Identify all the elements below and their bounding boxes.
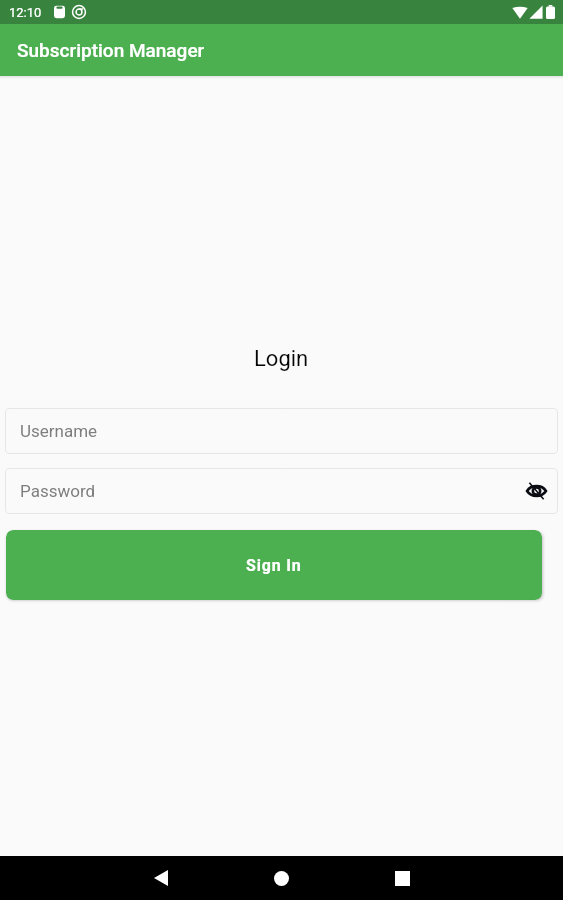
staticText: Username [20, 421, 98, 441]
button[interactable]: Home [243, 856, 320, 900]
staticText: Password [20, 481, 96, 501]
staticText: Sign In [246, 556, 302, 575]
button[interactable]: Password [5, 468, 558, 514]
button[interactable]: Back [122, 856, 199, 900]
button[interactable]: Toggle password visibility [522, 477, 550, 505]
staticText: Login [254, 346, 309, 372]
button[interactable]: Username [5, 408, 558, 454]
staticText: Subscription Manager [17, 39, 205, 61]
button[interactable]: Sign In [6, 530, 542, 600]
staticText: 12:10 [9, 5, 42, 20]
button[interactable]: Recent apps [364, 856, 441, 900]
